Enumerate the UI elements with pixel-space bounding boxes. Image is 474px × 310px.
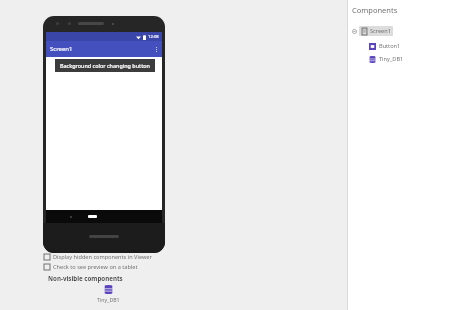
button[interactable]: Tiny_DB1	[90, 285, 126, 303]
staticText: Button1	[379, 42, 401, 50]
button[interactable]: Screen1	[46, 41, 162, 57]
staticText: 12:08	[148, 34, 159, 40]
staticText: Check to see preview on a tablet	[53, 263, 138, 271]
staticText: Tiny_DB1	[379, 55, 404, 63]
button[interactable]: Tiny_DB1	[369, 55, 404, 63]
staticText: Components	[352, 5, 398, 15]
staticText: Tiny_DB1	[97, 296, 120, 303]
staticText: Screen1	[370, 27, 391, 35]
button[interactable]: More options	[156, 47, 157, 52]
button[interactable]: Button1	[369, 42, 401, 50]
button[interactable]: Check to see preview on a tablet	[44, 263, 138, 271]
staticText: Screen1	[50, 45, 73, 53]
button[interactable]: Display hidden components in Viewer	[44, 253, 152, 261]
staticText: Display hidden components in Viewer	[53, 253, 152, 261]
button[interactable]: Background color changing button	[55, 59, 155, 72]
staticText: Background color changing button	[60, 62, 150, 69]
staticText: Non-visible components	[48, 274, 123, 282]
button[interactable]: Collapse	[352, 26, 393, 36]
button[interactable]: Collapse	[352, 29, 357, 34]
